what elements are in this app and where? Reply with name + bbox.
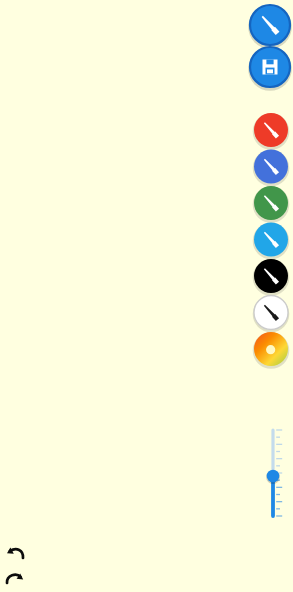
button[interactable]: Redo: [0, 563, 36, 591]
button[interactable]: Green colour: [254, 186, 288, 220]
button[interactable]: Save drawing: [250, 47, 290, 87]
button[interactable]: Pen tool: [250, 5, 290, 45]
button[interactable]: Red colour: [254, 113, 288, 147]
button[interactable]: Light blue colour: [254, 222, 288, 256]
button[interactable]: Blue colour: [254, 149, 288, 183]
button[interactable]: Rainbow colour: [254, 332, 288, 366]
button[interactable]: Undo: [0, 535, 36, 563]
button[interactable]: White colour: [254, 295, 288, 329]
button[interactable]: Brush size: [259, 424, 289, 522]
button[interactable]: Black colour: [254, 259, 288, 293]
